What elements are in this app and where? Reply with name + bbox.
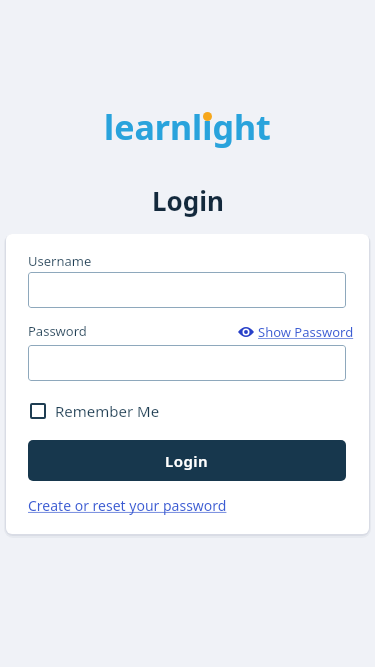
staticText: Username bbox=[28, 252, 92, 270]
button[interactable]: Login bbox=[28, 440, 346, 481]
staticText: learnlight bbox=[104, 104, 271, 150]
button[interactable] bbox=[28, 272, 346, 308]
button[interactable]: Show Password bbox=[238, 323, 354, 341]
staticText: Remember Me bbox=[55, 401, 160, 421]
button[interactable]: Create or reset your password bbox=[28, 496, 227, 515]
staticText: Password bbox=[28, 322, 87, 340]
button[interactable]: Remember Me bbox=[30, 401, 160, 421]
button[interactable] bbox=[28, 345, 346, 381]
staticText: Show Password bbox=[258, 323, 354, 341]
staticText: Create or reset your password bbox=[28, 496, 227, 515]
staticText: Login bbox=[165, 451, 209, 471]
staticText: Login bbox=[152, 183, 224, 218]
